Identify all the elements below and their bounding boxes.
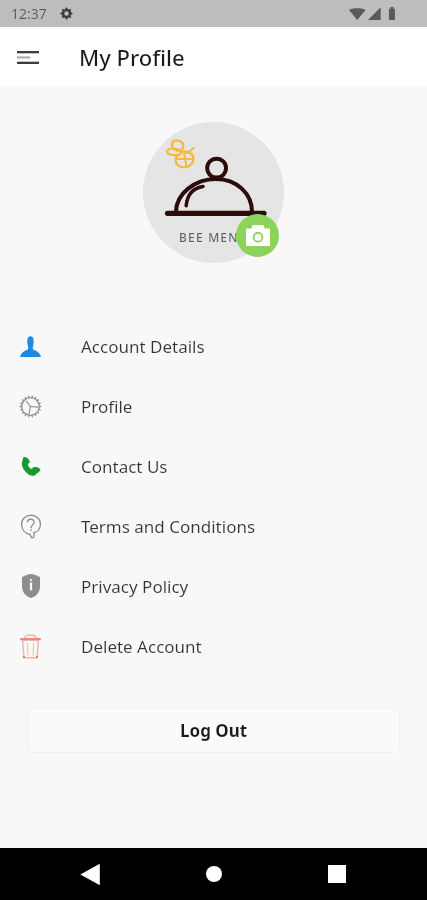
button[interactable]: Terms and Conditions [0,496,427,556]
button[interactable]: Contact Us [0,436,427,496]
staticText: Profile [81,395,133,418]
button[interactable]: Recent apps [317,854,357,894]
button[interactable]: Back [70,854,110,894]
staticText: BEE MENU [179,229,249,245]
button[interactable]: Log Out [27,707,400,753]
button[interactable]: Privacy Policy [0,556,427,616]
staticText: Contact Us [81,455,168,478]
staticText: 12:37 [11,4,47,23]
button[interactable]: Home [194,854,234,894]
button[interactable]: Change profile photo [236,214,279,257]
staticText: Delete Account [81,635,202,658]
button[interactable]: Open navigation menu [0,29,56,85]
staticText: Privacy Policy [81,575,189,598]
button[interactable]: Profile photo [143,122,284,263]
button[interactable]: Profile [0,376,427,436]
staticText: My Profile [79,42,185,72]
staticText: Terms and Conditions [81,515,256,538]
staticText: Log Out [180,719,248,742]
button[interactable]: Account Details [0,316,427,376]
staticText: Account Details [81,335,205,358]
button[interactable]: Delete Account [0,616,427,676]
